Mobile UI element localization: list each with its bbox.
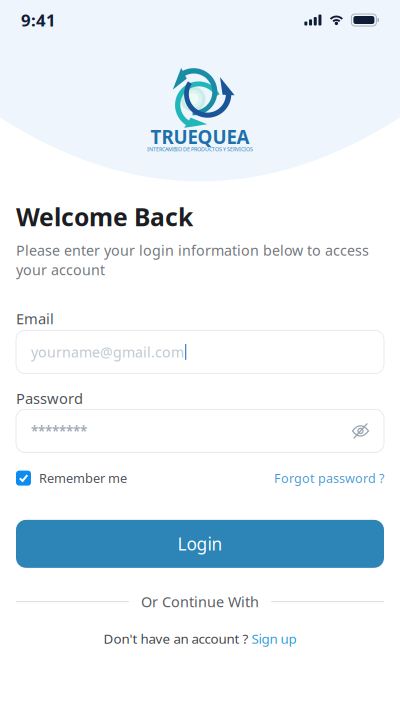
- button[interactable]: Forgot password ?: [274, 470, 384, 487]
- button[interactable]: Login: [16, 520, 384, 568]
- staticText: Forgot password ?: [274, 470, 384, 487]
- staticText: TRUEQUEA: [150, 124, 249, 149]
- staticText: Password: [16, 388, 83, 408]
- staticText: Login: [177, 532, 222, 556]
- button[interactable]: Show password: [352, 425, 369, 437]
- staticText: Welcome Back: [16, 200, 193, 234]
- staticText: Sign up: [251, 629, 296, 648]
- staticText: 9:41: [21, 9, 56, 31]
- staticText: ********: [31, 422, 87, 440]
- staticText: INTERCAMBIO DE PRODUCTOS Y SERVICIOS: [147, 145, 253, 153]
- staticText: Don't have an account ?: [103, 629, 251, 648]
- staticText: Remember me: [39, 469, 127, 487]
- button[interactable]: Sign up: [251, 629, 296, 648]
- staticText: Email: [16, 308, 54, 328]
- staticText: Or Continue With: [141, 592, 259, 611]
- staticText: yourname@gmail.com: [31, 342, 184, 361]
- button[interactable]: Remember me: [16, 469, 127, 487]
- staticText: Please enter your login information belo…: [16, 241, 369, 279]
